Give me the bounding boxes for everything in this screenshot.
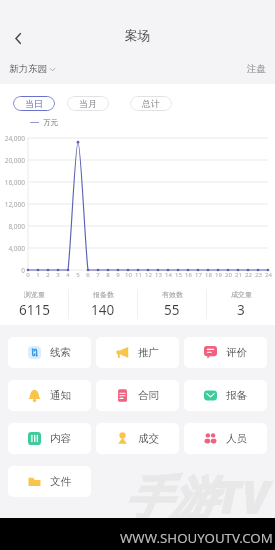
staticText: 0 <box>21 266 25 275</box>
staticText: 手游TV <box>124 465 270 518</box>
staticText: 注盘 <box>247 63 266 75</box>
staticText: 当日 <box>25 98 43 109</box>
staticText: 22 <box>245 271 252 279</box>
staticText: 3 <box>237 301 245 319</box>
staticText: 9 <box>116 271 120 279</box>
staticText: 18 <box>205 271 212 279</box>
staticText: 推广 <box>138 346 159 359</box>
button[interactable]: 文件 <box>8 466 91 497</box>
staticText: 5 <box>76 271 80 279</box>
staticText: 14 <box>165 271 172 279</box>
staticText: 20,000 <box>4 156 25 165</box>
staticText: 1 <box>36 271 40 279</box>
staticText: 12 <box>145 271 152 279</box>
staticText: 55 <box>164 301 180 319</box>
staticText: 12,000 <box>4 200 25 209</box>
staticText: 文件 <box>50 475 71 488</box>
staticText: 6115 <box>19 301 50 319</box>
staticText: 报备数 <box>93 290 114 299</box>
staticText: 0 <box>26 271 30 279</box>
button[interactable]: 当日 <box>13 96 55 111</box>
staticText: 当月 <box>79 98 97 109</box>
button[interactable]: 通知 <box>8 380 91 411</box>
button[interactable]: 总计 <box>130 96 172 111</box>
staticText: 案场 <box>125 28 150 44</box>
staticText: 19 <box>215 271 222 279</box>
staticText: 成交量 <box>231 290 252 299</box>
staticText: 8 <box>106 271 110 279</box>
staticText: 评价 <box>226 346 247 359</box>
staticText: 万元 <box>43 118 58 127</box>
staticText: 2 <box>46 271 50 279</box>
button[interactable]: 成交 <box>96 423 179 454</box>
button[interactable]: 注盘 <box>247 63 275 75</box>
staticText: 21 <box>235 271 242 279</box>
button[interactable]: 当月 <box>67 96 109 111</box>
button[interactable]: 合同 <box>96 380 179 411</box>
button[interactable]: 人员 <box>184 423 267 454</box>
staticText: 成交 <box>138 432 159 445</box>
staticText: 6 <box>86 271 90 279</box>
staticText: 线索 <box>50 346 71 359</box>
staticText: 有效数 <box>162 290 183 299</box>
staticText: 总计 <box>142 98 160 109</box>
staticText: 合同 <box>138 389 159 402</box>
staticText: 11 <box>135 271 142 279</box>
button[interactable]: 内容 <box>8 423 91 454</box>
staticText: 10 <box>125 271 132 279</box>
staticText: 4,000 <box>8 244 25 253</box>
staticText: 20 <box>225 271 232 279</box>
button[interactable]: 推广 <box>96 337 179 368</box>
staticText: 17 <box>195 271 202 279</box>
button[interactable]: Back <box>7 27 29 49</box>
staticText: 浏览量 <box>24 290 45 299</box>
staticText: 140 <box>91 301 115 319</box>
staticText: 13 <box>155 271 162 279</box>
staticText: 新力东园 <box>9 63 47 75</box>
button[interactable]: 新力东园 <box>9 63 55 75</box>
staticText: 16,000 <box>4 178 25 187</box>
staticText: 8,000 <box>8 222 25 231</box>
button[interactable]: 评价 <box>184 337 267 368</box>
staticText: 4 <box>66 271 70 279</box>
staticText: WWW.SHOUYOUTV.COM <box>120 529 273 547</box>
staticText: 人员 <box>226 432 247 445</box>
staticText: 23 <box>255 271 262 279</box>
staticText: 内容 <box>50 432 71 445</box>
staticText: 7 <box>96 271 100 279</box>
staticText: 通知 <box>50 389 71 402</box>
button[interactable]: 报备 <box>184 380 267 411</box>
staticText: 报备 <box>226 389 247 402</box>
staticText: 24,000 <box>4 134 25 143</box>
staticText: 24 <box>265 271 272 279</box>
staticText: 16 <box>185 271 192 279</box>
button[interactable]: 线索 <box>8 337 91 368</box>
staticText: 3 <box>56 271 60 279</box>
staticText: 15 <box>175 271 182 279</box>
